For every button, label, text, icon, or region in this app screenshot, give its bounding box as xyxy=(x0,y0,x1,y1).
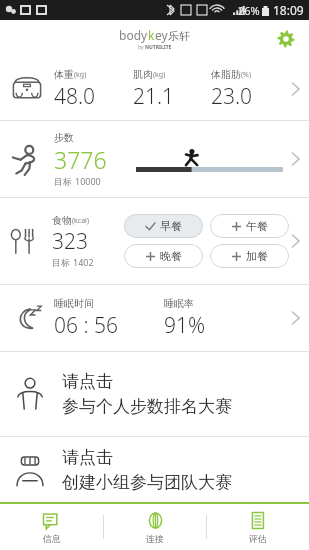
staticText: 晚餐 xyxy=(160,249,182,263)
staticText: 肌肉 xyxy=(133,68,153,81)
staticText: 食物 xyxy=(52,214,72,227)
staticText: ey xyxy=(155,27,168,43)
staticText: 参与个人步数排名大赛 xyxy=(62,396,232,417)
staticText: (%) xyxy=(241,70,252,80)
staticText: 1402 xyxy=(73,256,94,268)
staticText: 06 : 56 xyxy=(54,311,119,340)
button[interactable]: 信息 xyxy=(0,504,103,550)
button[interactable]: 连接 xyxy=(104,504,206,550)
button[interactable]: 早餐 xyxy=(124,214,203,238)
staticText: 睡眠率 xyxy=(164,297,194,310)
button[interactable]: Settings xyxy=(273,26,299,52)
staticText: 加餐 xyxy=(246,249,268,263)
staticText: k xyxy=(148,27,155,43)
staticText: 目标 xyxy=(54,176,72,187)
button[interactable]: 体重 xyxy=(0,58,309,120)
staticText: 乐轩 xyxy=(168,29,190,43)
staticText: 目标 xyxy=(52,257,70,268)
staticText: 连接 xyxy=(146,533,164,544)
button[interactable]: 晚餐 xyxy=(124,244,203,268)
staticText: 21.1 xyxy=(133,82,175,111)
staticText: by xyxy=(138,44,145,51)
button[interactable]: 食物 xyxy=(0,198,309,284)
staticText: 请点击 xyxy=(62,371,113,392)
button[interactable]: 午餐 xyxy=(210,214,289,238)
staticText: body xyxy=(119,27,148,43)
staticText: 信息 xyxy=(43,533,61,544)
staticText: 早餐 xyxy=(160,219,182,233)
staticText: 23.0 xyxy=(211,82,253,111)
staticText: 步数 xyxy=(54,131,74,144)
staticText: 26% xyxy=(238,3,260,18)
staticText: 3776 xyxy=(54,144,107,175)
staticText: 体脂肪 xyxy=(211,68,241,81)
staticText: (kcal) xyxy=(72,216,90,226)
staticText: 91% xyxy=(164,311,206,340)
staticText: 创建小组参与团队大赛 xyxy=(62,472,232,493)
staticText: 睡眠时间 xyxy=(54,297,94,310)
staticText: 10000 xyxy=(75,175,101,187)
staticText: 323 xyxy=(52,227,88,256)
button[interactable]: 请点击 xyxy=(0,437,309,502)
button[interactable]: 评估 xyxy=(207,504,309,550)
staticText: 体重 xyxy=(54,68,74,81)
staticText: 午餐 xyxy=(246,219,268,233)
staticText: 请点击 xyxy=(62,447,113,468)
button[interactable]: 请点击 xyxy=(0,352,309,436)
staticText: (kg) xyxy=(153,70,166,80)
staticText: NUTRILITE xyxy=(145,44,172,51)
staticText: 18:09 xyxy=(273,2,304,18)
button[interactable]: 睡眠时间 xyxy=(0,285,309,351)
staticText: (kg) xyxy=(74,70,87,80)
staticText: 评估 xyxy=(249,533,267,544)
button[interactable]: 步数 xyxy=(0,121,309,197)
button[interactable]: 加餐 xyxy=(210,244,289,268)
staticText: 48.0 xyxy=(54,82,96,111)
